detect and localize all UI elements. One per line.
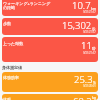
staticText: 25.3 [74, 73, 93, 86]
staticText: 9/25 21:57 [83, 30, 96, 34]
staticText: 9/25 21:57 [83, 10, 96, 14]
staticText: 68.2 [73, 95, 92, 100]
staticText: 体脂肪率 [3, 75, 19, 80]
staticText: km [91, 6, 96, 11]
staticText: 11 [81, 39, 92, 52]
staticText: 身体測定値 [2, 65, 22, 70]
staticText: 10.7 [72, 0, 91, 12]
staticText: ウォーキング+ランニング の距離 [3, 1, 51, 11]
button[interactable]: 体脂肪率 [2, 72, 98, 92]
staticText: 15,302 [62, 19, 92, 32]
staticText: 上った階数 [3, 41, 24, 46]
button[interactable]: ウォーキング+ランニング の距離 [2, 0, 98, 16]
staticText: 歩 [92, 27, 96, 31]
button[interactable]: 歩数 [2, 18, 98, 35]
staticText: 階 [92, 47, 96, 51]
staticText: % [93, 80, 96, 85]
staticText: kg [92, 95, 96, 100]
button[interactable]: 体重 [2, 94, 98, 100]
button[interactable]: 上った階数 [2, 37, 98, 62]
staticText: 体重 [3, 97, 11, 100]
staticText: 9/25 20:01 [83, 84, 96, 88]
staticText: 9/25 21:57 [83, 51, 96, 55]
staticText: 歩数 [3, 21, 11, 26]
